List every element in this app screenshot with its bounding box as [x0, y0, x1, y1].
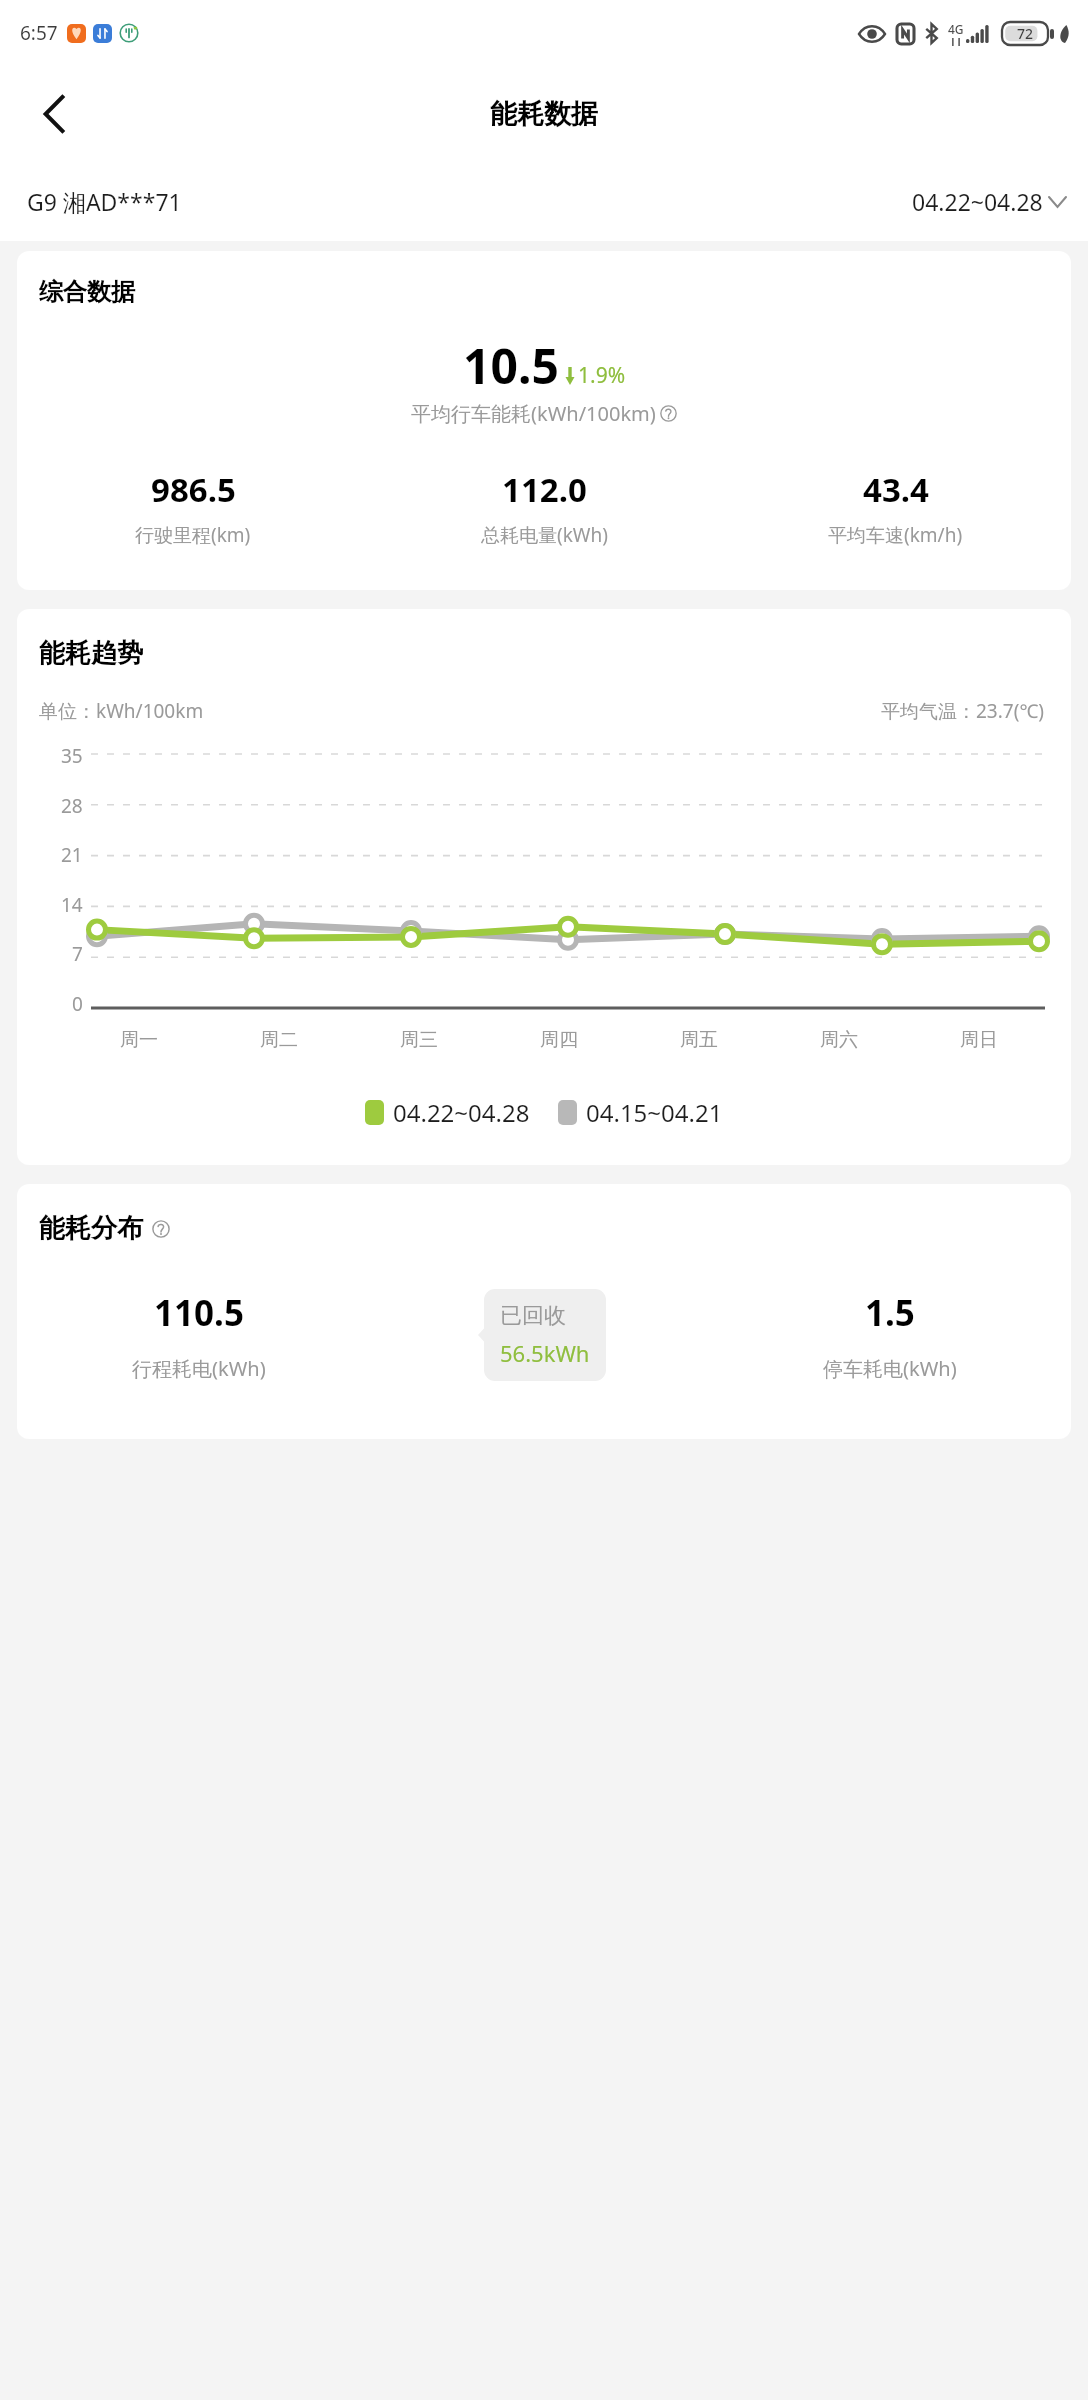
staticText: 04.15~04.21	[586, 1096, 723, 1129]
staticText: 周一	[120, 1028, 158, 1052]
staticText: 平均气温：23.7(℃)	[881, 698, 1045, 724]
staticText: 能耗分布	[39, 1212, 143, 1245]
staticText: 110.5	[154, 1289, 244, 1337]
staticText: 周六	[820, 1028, 858, 1052]
staticText: 72	[1017, 24, 1034, 43]
staticText: 能耗数据	[490, 97, 598, 131]
staticText: 35	[61, 743, 83, 765]
button[interactable]: Back	[26, 86, 82, 142]
staticText: 行驶里程(km)	[135, 522, 251, 548]
staticText: 周三	[400, 1028, 438, 1052]
staticText: 43.4	[863, 467, 929, 512]
staticText: 7	[72, 941, 83, 963]
staticText: 986.5	[151, 467, 236, 512]
staticText: 56.5kWh	[500, 1338, 590, 1368]
staticText: 14	[61, 892, 83, 914]
staticText: 已回收	[500, 1302, 566, 1330]
staticText: 总耗电量(kWh)	[481, 522, 608, 548]
staticText: 28	[61, 793, 83, 815]
staticText: 周四	[540, 1028, 578, 1052]
staticText: 行程耗电(kWh)	[132, 1355, 266, 1382]
staticText: 周五	[680, 1028, 718, 1052]
staticText: G9 湘AD***71	[27, 186, 182, 217]
staticText: 平均行车能耗(kWh/100km)	[411, 400, 656, 427]
staticText: 能耗趋势	[39, 637, 143, 670]
staticText: 21	[61, 842, 83, 864]
staticText: 04.22~04.28	[393, 1096, 530, 1129]
staticText: 平均车速(km/h)	[828, 522, 963, 548]
staticText: 112.0	[502, 467, 587, 512]
staticText: 4G	[948, 21, 964, 37]
staticText: 1.9%	[578, 361, 626, 390]
staticText: 04.22~04.28	[912, 186, 1043, 217]
staticText: 周二	[260, 1028, 298, 1052]
staticText: 6:57	[20, 20, 58, 46]
staticText: 停车耗电(kWh)	[823, 1355, 957, 1382]
button[interactable]: 04.22~04.28	[912, 186, 1066, 217]
staticText: 周日	[960, 1028, 998, 1052]
staticText: 单位：kWh/100km	[39, 698, 204, 724]
staticText: 10.5	[463, 333, 559, 398]
staticText: 0	[72, 991, 83, 1013]
staticText: 综合数据	[39, 277, 135, 307]
staticText: 1.5	[865, 1289, 915, 1337]
